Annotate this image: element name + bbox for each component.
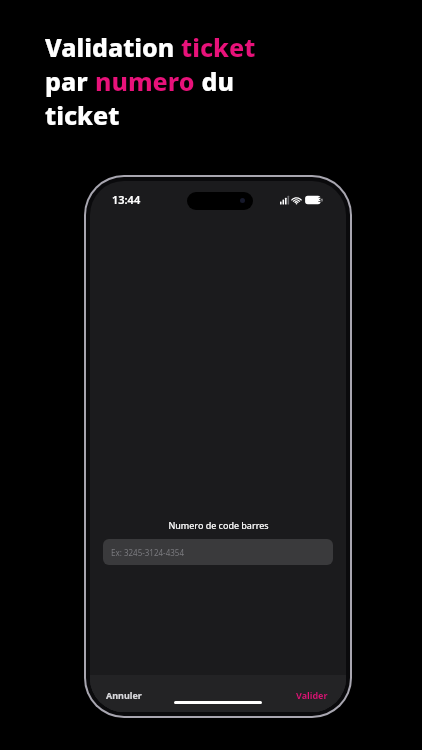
staticText: ticket — [45, 98, 120, 132]
staticText: Valider — [296, 689, 328, 701]
button[interactable]: Annuler — [102, 687, 146, 703]
staticText: du — [195, 64, 234, 98]
staticText: 13:44 — [112, 192, 141, 207]
button[interactable]: Valider — [292, 687, 332, 703]
staticText: Annuler — [106, 689, 142, 701]
staticText: Numero de code barres — [168, 519, 269, 531]
staticText: par — [45, 64, 95, 98]
staticText: 37 — [318, 195, 327, 205]
staticText: ticket — [181, 30, 256, 64]
button[interactable]: Ex: 3245-3124-4354 — [103, 539, 333, 565]
staticText: Validation — [45, 30, 181, 64]
staticText: Ex: 3245-3124-4354 — [111, 547, 184, 558]
staticText: numero — [95, 64, 195, 98]
